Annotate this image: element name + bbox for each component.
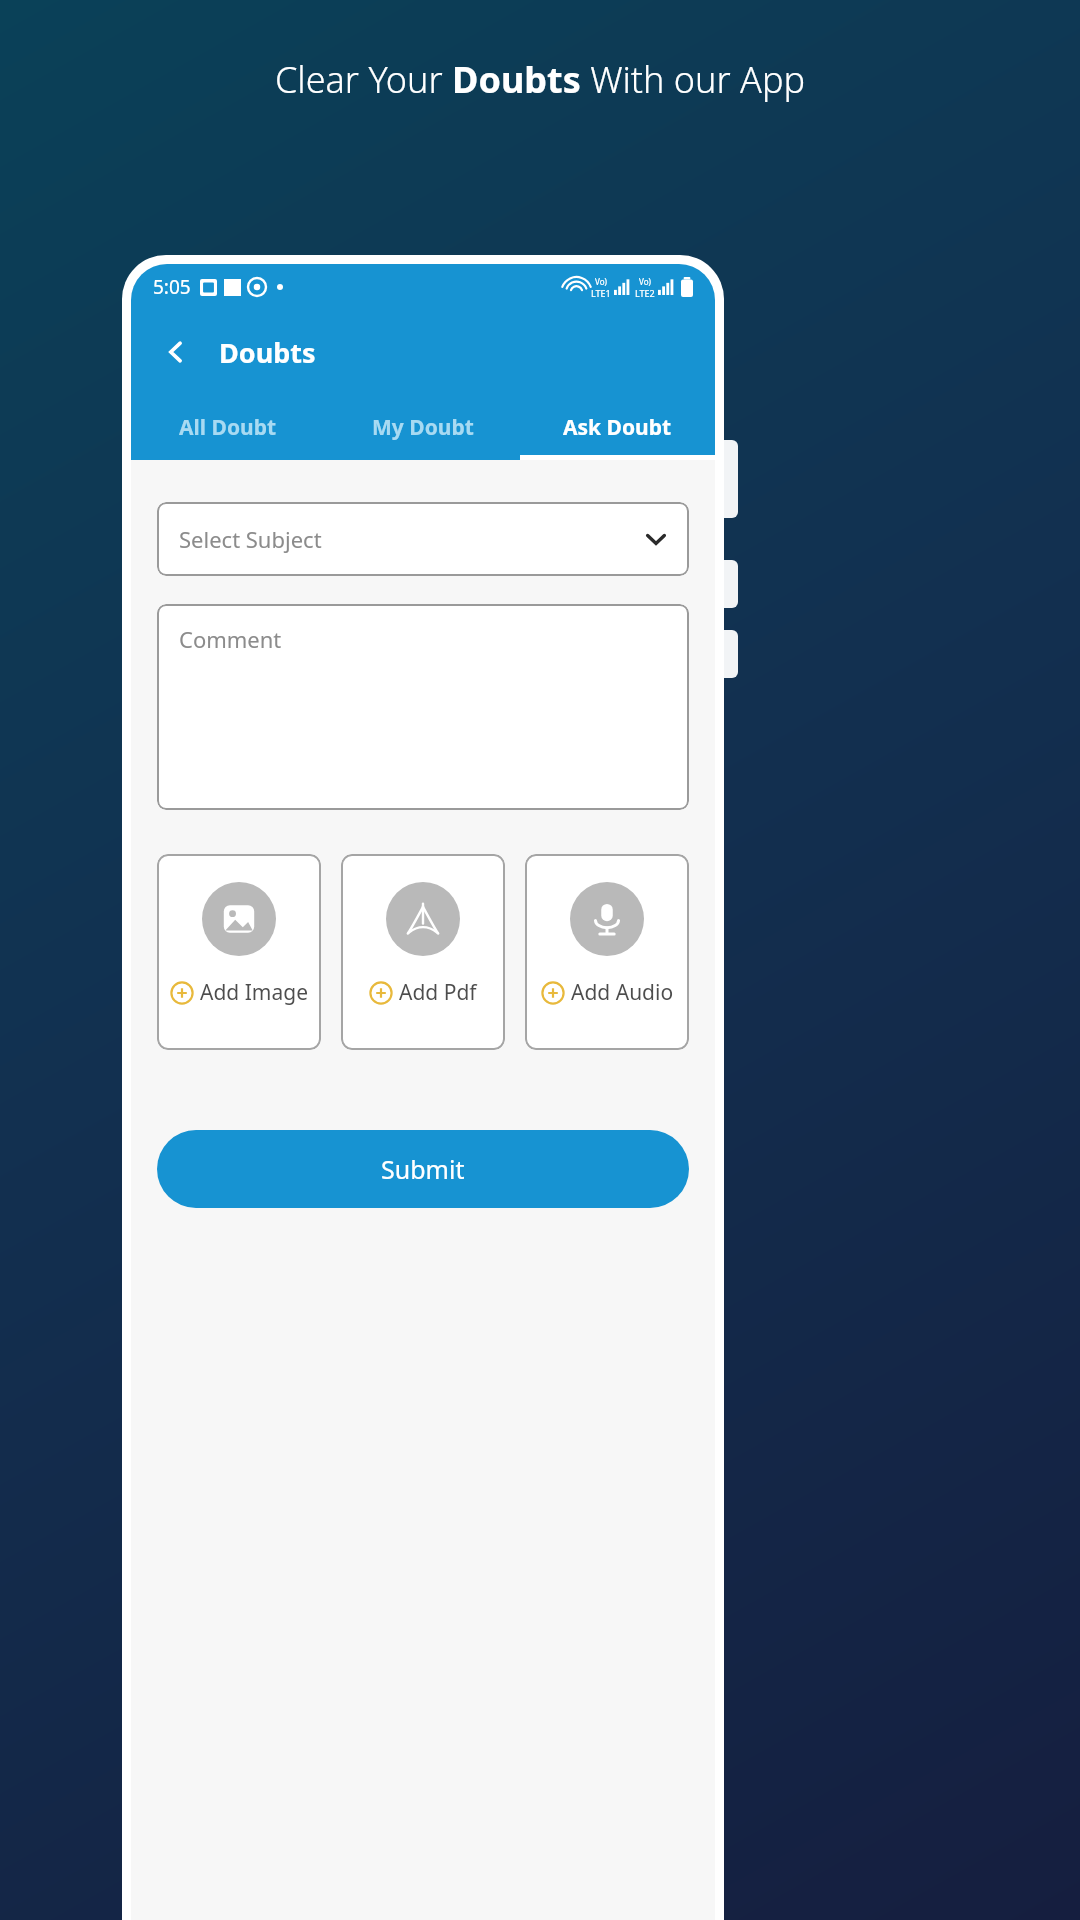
button[interactable]: Comment bbox=[157, 604, 689, 810]
staticText: Add Image bbox=[200, 978, 309, 1007]
button[interactable]: Add Image bbox=[157, 854, 321, 1050]
staticText: Ask Doubt bbox=[563, 413, 672, 442]
button[interactable]: Add Pdf bbox=[341, 854, 505, 1050]
staticText: Add Pdf bbox=[399, 978, 477, 1007]
button[interactable]: Ask Doubt bbox=[520, 394, 715, 460]
button[interactable]: Add Audio bbox=[525, 854, 689, 1050]
staticText: Vo) bbox=[639, 276, 651, 287]
staticText: Comment bbox=[179, 624, 282, 654]
button[interactable]: All Doubt bbox=[131, 394, 325, 460]
staticText: Doubts bbox=[219, 334, 316, 371]
staticText: All Doubt bbox=[179, 413, 277, 442]
staticText: Add Audio bbox=[571, 978, 674, 1007]
button[interactable]: Back bbox=[151, 327, 201, 377]
staticText: Select Subject bbox=[179, 524, 322, 554]
staticText: LTE1 bbox=[591, 287, 611, 299]
staticText: Submit bbox=[381, 1152, 465, 1186]
staticText: Vo) bbox=[595, 276, 607, 287]
staticText: Clear Your Doubts With our App bbox=[60, 55, 1020, 104]
button[interactable]: Select Subject bbox=[157, 502, 689, 576]
button[interactable]: Submit bbox=[157, 1130, 689, 1208]
staticText: My Doubt bbox=[372, 413, 474, 442]
staticText: 5:05 bbox=[153, 274, 191, 300]
staticText: LTE2 bbox=[635, 287, 655, 299]
button[interactable]: My Doubt bbox=[325, 394, 520, 460]
